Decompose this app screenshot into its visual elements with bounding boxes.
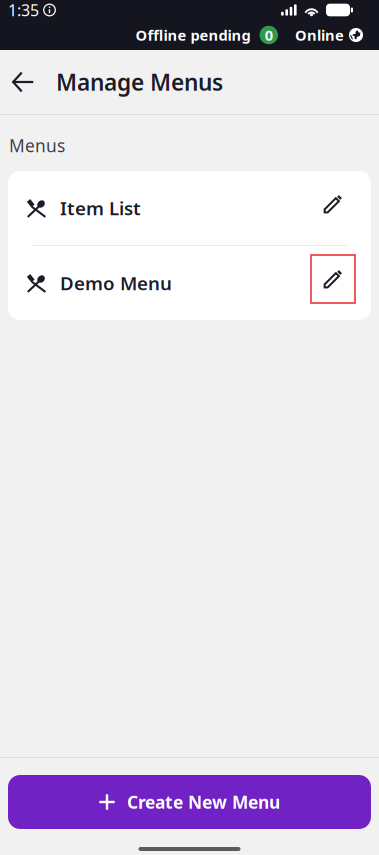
button[interactable]: Create New Menu [8,775,371,829]
staticText: Online [295,25,344,45]
button[interactable]: Back [2,57,44,107]
staticText: Offline pending [135,25,250,45]
staticText: Create New Menu [127,790,280,813]
staticText: 1:35 [8,0,39,21]
button[interactable]: Edit Item List [311,184,355,232]
staticText: Manage Menus [56,67,223,97]
staticText: Demo Menu [60,271,172,295]
staticText: Menus [9,134,65,157]
button[interactable]: Edit Demo Menu [311,259,355,307]
staticText: 0 [265,25,273,45]
staticText: Item List [60,196,141,220]
